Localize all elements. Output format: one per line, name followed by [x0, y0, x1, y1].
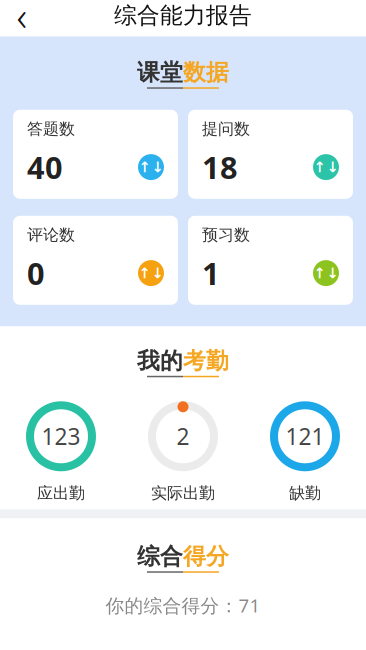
staticText: ↑	[313, 265, 325, 281]
staticText: 18	[202, 147, 238, 187]
staticText: 缺勤	[289, 483, 321, 503]
button[interactable]: 答题数	[13, 110, 178, 199]
staticText: 2	[176, 421, 189, 451]
staticText: ↑	[313, 159, 325, 175]
staticText: 答题数	[27, 119, 75, 139]
button[interactable]: Back	[0, 0, 44, 35]
staticText: ↓	[326, 265, 338, 281]
staticText: 应出勤	[37, 483, 85, 503]
staticText: 课堂	[137, 58, 183, 86]
button[interactable]: 提问数	[188, 110, 353, 199]
staticText: 提问数	[202, 119, 250, 139]
staticText: 评论数	[27, 225, 75, 245]
staticText: ‹	[16, 0, 27, 42]
staticText: 121	[285, 421, 324, 451]
staticText: 实际出勤	[151, 483, 215, 503]
staticText: 综合	[137, 542, 183, 570]
staticText: 123	[41, 421, 80, 451]
staticText: 我的	[137, 347, 183, 375]
staticText: 综合能力报告	[114, 1, 252, 29]
staticText: ↓	[151, 265, 163, 281]
staticText: 考勤	[183, 347, 229, 375]
staticText: 你的综合得分：71	[105, 593, 260, 618]
button[interactable]: 评论数	[13, 216, 178, 305]
staticText: ↑	[138, 159, 150, 175]
button[interactable]: 预习数	[188, 216, 353, 305]
staticText: ↑	[138, 265, 150, 281]
staticText: ↓	[326, 159, 338, 175]
staticText: 预习数	[202, 225, 250, 245]
staticText: ↓	[151, 159, 163, 175]
staticText: 40	[27, 147, 63, 187]
staticText: 数据	[183, 58, 229, 86]
staticText: 0	[27, 253, 45, 293]
staticText: 1	[202, 253, 220, 293]
staticText: 得分	[183, 542, 229, 570]
